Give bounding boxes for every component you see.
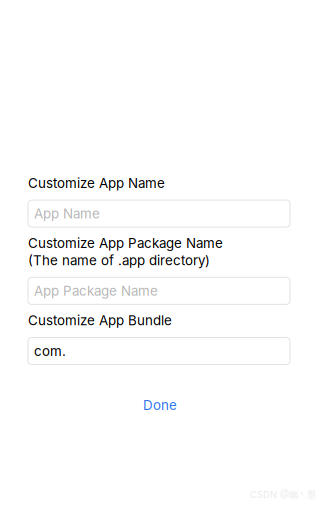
staticText: Done (143, 397, 177, 413)
staticText: Customize App Bundle (28, 312, 172, 328)
button[interactable]: App Name (28, 200, 290, 227)
button[interactable]: Done (137, 391, 183, 419)
staticText: (The name of .app directory) (28, 252, 210, 268)
staticText: App Package Name (34, 283, 158, 299)
staticText: CSDN @幽丶墨 (250, 489, 316, 501)
staticText: com. (34, 343, 66, 359)
staticText: Customize App Name (28, 175, 165, 191)
staticText: Customize App Package Name (28, 235, 223, 251)
button[interactable]: com. (28, 337, 290, 364)
staticText: App Name (34, 206, 100, 222)
button[interactable]: App Package Name (28, 277, 290, 304)
